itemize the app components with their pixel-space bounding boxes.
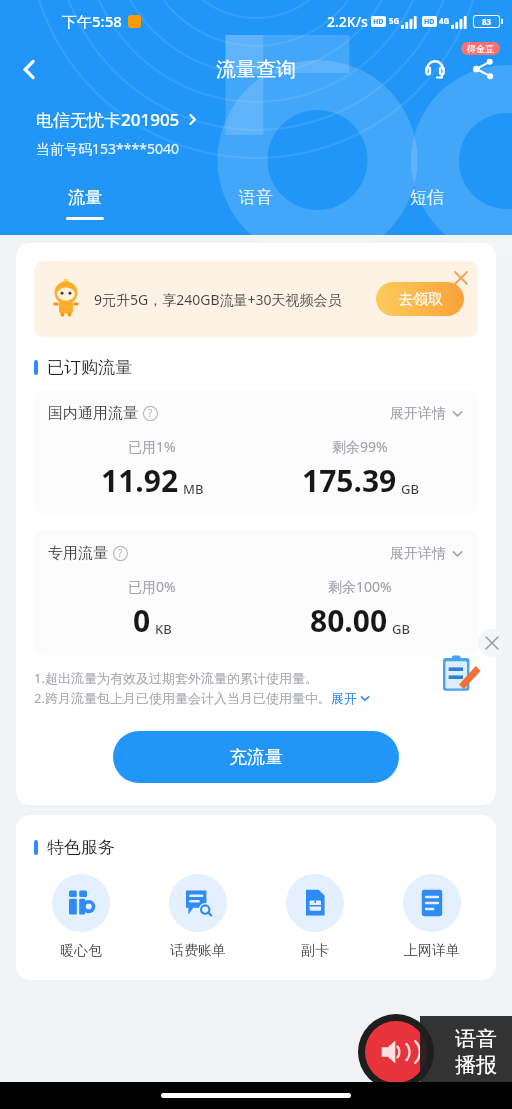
staticText: 特色服务 (47, 837, 115, 858)
button[interactable]: 专用流量 (34, 530, 478, 655)
staticText: GB (392, 620, 410, 638)
staticText: MB (183, 480, 204, 498)
button[interactable]: Share (462, 48, 504, 90)
staticText: GB (401, 480, 419, 498)
staticText: 语音 (239, 187, 273, 208)
button[interactable]: 得金豆 (461, 42, 500, 55)
staticText: ? (118, 546, 123, 560)
staticText: 剩余100% (328, 577, 392, 596)
button[interactable]: 电信无忧卡201905 (36, 108, 199, 131)
button[interactable]: 国内通用流量 (34, 390, 478, 515)
staticText: 4G (439, 15, 450, 26)
button[interactable]: 话费账单 (139, 874, 256, 960)
staticText: 已用1% (128, 437, 176, 456)
staticText: 话费账单 (170, 942, 226, 960)
staticText: 副卡 (301, 942, 329, 960)
staticText: 2.跨月流量包上月已使用量会计入当月已使用量中。 (34, 689, 331, 707)
staticText: 剩余99% (332, 437, 388, 456)
button[interactable]: 暖心包 (22, 874, 139, 960)
button[interactable]: 展开 (331, 690, 371, 706)
staticText: 得金豆 (467, 43, 494, 54)
button[interactable]: 语音 (170, 185, 341, 235)
staticText: 83 (482, 16, 492, 27)
staticText: 175.39 (302, 460, 397, 501)
staticText: 充流量 (229, 746, 283, 769)
staticText: 2.2K/s (327, 12, 368, 31)
button[interactable]: 去领取 (376, 282, 464, 316)
staticText: 展开 (331, 690, 357, 706)
staticText: 下午5:58 (62, 11, 122, 31)
staticText: 国内通用流量 (48, 404, 138, 423)
staticText: 80.00 (310, 600, 388, 641)
staticText: 暖心包 (60, 942, 102, 960)
staticText: 流量 (68, 187, 102, 208)
staticText: 9元升5G，享240GB流量+30天视频会员 (94, 290, 342, 309)
button[interactable]: 9元升5G，享240GB流量+30天视频会员 (34, 261, 478, 337)
staticText: 短信 (410, 187, 444, 208)
staticText: 流量查询 (216, 57, 296, 82)
staticText: 去领取 (398, 290, 443, 309)
staticText: 已用0% (128, 577, 176, 596)
staticText: 专用流量 (48, 544, 108, 563)
button[interactable]: 副卡 (256, 874, 373, 960)
staticText: 已订购流量 (47, 357, 132, 378)
staticText: 1.超出流量为有效及过期套外流量的累计使用量。 (34, 669, 318, 687)
staticText: KB (155, 620, 172, 638)
staticText: 展开详情 (390, 545, 446, 563)
staticText: HD (373, 17, 384, 27)
staticText: ? (148, 406, 153, 420)
button[interactable]: 短信 (341, 185, 512, 235)
staticText: 展开详情 (390, 405, 446, 423)
button[interactable]: Back (6, 46, 52, 92)
staticText: 上网详单 (404, 942, 460, 960)
button[interactable]: Feedback (437, 652, 481, 696)
button[interactable]: Voice broadcast (358, 1011, 512, 1093)
staticText: HD (424, 17, 435, 27)
button[interactable]: 流量 (0, 185, 170, 235)
staticText: 语音 (455, 1026, 497, 1052)
button[interactable]: 充流量 (113, 731, 399, 783)
staticText: 5G (389, 15, 400, 26)
button[interactable]: Close feedback (478, 629, 506, 657)
button[interactable]: 上网详单 (373, 874, 490, 960)
staticText: 当前号码153****5040 (36, 139, 179, 158)
button[interactable]: Close banner (449, 266, 473, 290)
staticText: 播报 (455, 1052, 497, 1078)
staticText: 0 (133, 600, 151, 641)
staticText: 电信无忧卡201905 (36, 108, 180, 131)
button[interactable]: Customer service (414, 48, 456, 90)
staticText: 11.92 (101, 460, 179, 501)
